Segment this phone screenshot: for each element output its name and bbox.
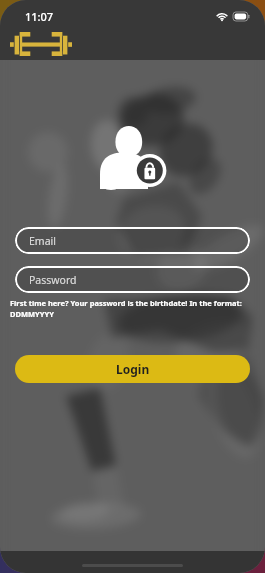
staticText: First time here? Your password is the bi… [10,298,257,319]
staticText: Email [29,234,56,248]
staticText: Login [116,361,150,377]
button[interactable]: Password [15,266,250,293]
other: App logo [10,32,72,56]
button[interactable]: Email [15,227,250,254]
button[interactable]: Login [15,355,250,383]
staticText: 11:07 [25,9,54,24]
staticText: Password [29,273,77,287]
